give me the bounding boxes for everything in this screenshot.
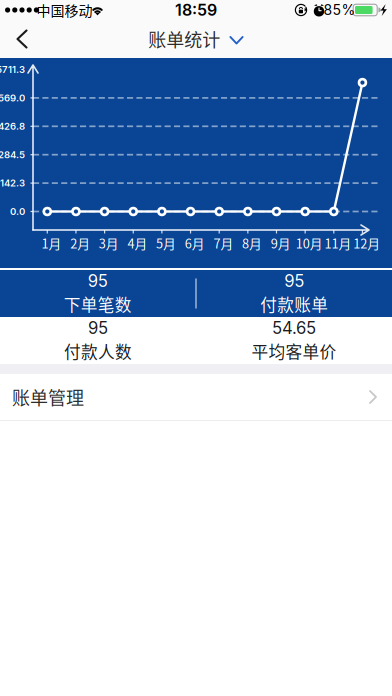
staticText: 4月 <box>127 233 147 252</box>
staticText: 95 <box>284 271 304 291</box>
staticText: 5月 <box>156 233 176 252</box>
staticText: 95 <box>88 271 108 291</box>
staticText: 付款人数 <box>64 339 132 363</box>
staticText: 下单笔数 <box>64 292 132 316</box>
staticText: 1月 <box>41 233 61 252</box>
staticText: 7月 <box>213 233 233 252</box>
staticText: 5711.3 <box>0 64 25 75</box>
staticText: 9月 <box>271 233 291 252</box>
staticText: 6月 <box>185 233 205 252</box>
staticText: 54.65 <box>272 318 316 338</box>
staticText: 平均客单价 <box>251 339 336 363</box>
button[interactable]: 账单管理 <box>0 374 392 420</box>
staticText: 1142.3 <box>0 177 25 189</box>
staticText: 中国移动 <box>36 0 92 20</box>
staticText: 0.0 <box>10 206 25 217</box>
staticText: 95 <box>88 318 108 338</box>
staticText: 付款账单 <box>260 292 328 316</box>
staticText: 3426.8 <box>0 120 25 132</box>
staticText: 账单统计 <box>148 26 220 52</box>
staticText: 2月 <box>70 233 90 252</box>
staticText: 4569.0 <box>0 92 25 104</box>
staticText: 12月 <box>353 233 380 252</box>
staticText: 85% <box>323 1 355 18</box>
staticText: 18:59 <box>175 0 217 20</box>
staticText: 10月 <box>296 233 323 252</box>
staticText: 3月 <box>99 233 119 252</box>
staticText: 8月 <box>242 233 262 252</box>
staticText: 账单管理 <box>12 384 84 410</box>
button[interactable]: 返回 <box>0 20 42 57</box>
staticText: 2284.5 <box>0 149 25 160</box>
staticText: 11月 <box>324 233 351 252</box>
